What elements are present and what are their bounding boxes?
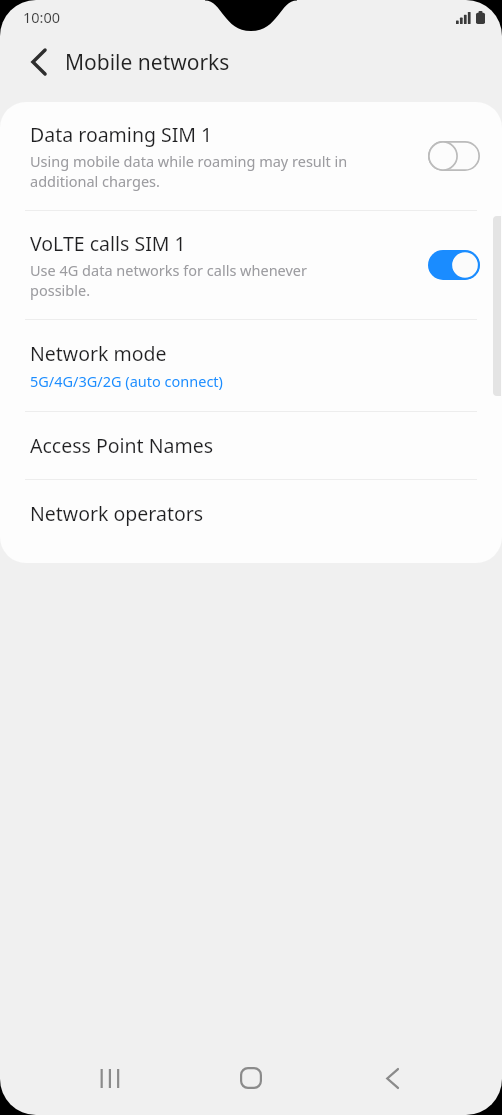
staticText: 10:00: [23, 7, 61, 27]
staticText: Use 4G data networks for calls whenever …: [30, 260, 308, 300]
button[interactable]: Switch off: [428, 141, 480, 171]
button[interactable]: Navigate up: [17, 40, 61, 84]
button[interactable]: Network mode: [0, 320, 502, 411]
button[interactable]: Access Point Names: [0, 412, 502, 479]
button[interactable]: Switch on: [428, 250, 480, 280]
staticText: 5G/4G/3G/2G (auto connect): [30, 371, 223, 391]
button[interactable]: Data roaming SIM 1: [0, 102, 502, 210]
staticText: VoLTE calls SIM 1: [30, 230, 186, 257]
staticText: Network operators: [30, 500, 204, 527]
button[interactable]: VoLTE calls SIM 1: [0, 211, 502, 319]
button[interactable]: Back: [361, 1047, 423, 1109]
staticText: Using mobile data while roaming may resu…: [30, 151, 348, 191]
button[interactable]: Recent apps: [79, 1047, 141, 1109]
staticText: Data roaming SIM 1: [30, 121, 213, 148]
button[interactable]: Network operators: [0, 480, 502, 547]
staticText: Network mode: [30, 340, 167, 367]
staticText: Access Point Names: [30, 432, 214, 459]
staticText: Mobile networks: [65, 48, 230, 77]
button[interactable]: Home: [220, 1047, 282, 1109]
